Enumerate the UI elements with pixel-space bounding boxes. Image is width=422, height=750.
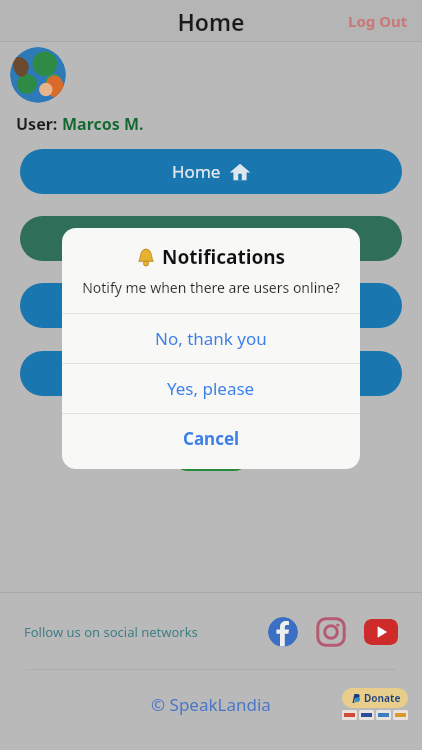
button[interactable]: Facebook	[268, 617, 298, 647]
button[interactable]: YouTube	[364, 619, 398, 645]
button[interactable]	[20, 216, 402, 261]
button[interactable]: Cancel	[62, 414, 360, 463]
staticText: Yes, please	[167, 377, 255, 400]
staticText: Home	[172, 160, 221, 183]
button[interactable]: Profile picture	[10, 47, 66, 103]
staticText: Home	[177, 6, 245, 37]
button[interactable]: Donate with PayPal	[342, 688, 408, 720]
staticText: User:	[16, 113, 62, 135]
button[interactable]: No, thank you	[62, 314, 360, 363]
button[interactable]: Log Out	[342, 7, 414, 35]
button[interactable]: Notifications toggle, on	[172, 439, 250, 471]
button[interactable]: © SpeakLandia	[147, 689, 275, 720]
button[interactable]	[20, 283, 402, 328]
staticText: Donate	[364, 691, 401, 705]
staticText: No, thank you	[155, 327, 267, 350]
button[interactable]: Yes, please	[62, 364, 360, 413]
button[interactable]: Instagram	[316, 617, 346, 647]
staticText: Notifications	[162, 244, 286, 270]
staticText: Cancel	[183, 427, 240, 450]
staticText: Notify me when there are users online?	[72, 278, 350, 297]
button[interactable]: Home	[20, 149, 402, 194]
staticText: Follow us on social networks	[24, 623, 198, 641]
staticText: Receive notifications from users online	[84, 408, 339, 427]
staticText: © SpeakLandia	[151, 693, 271, 716]
staticText: Marcos M.	[62, 113, 144, 135]
button[interactable]	[20, 351, 402, 396]
staticText: Log Out	[348, 11, 408, 31]
